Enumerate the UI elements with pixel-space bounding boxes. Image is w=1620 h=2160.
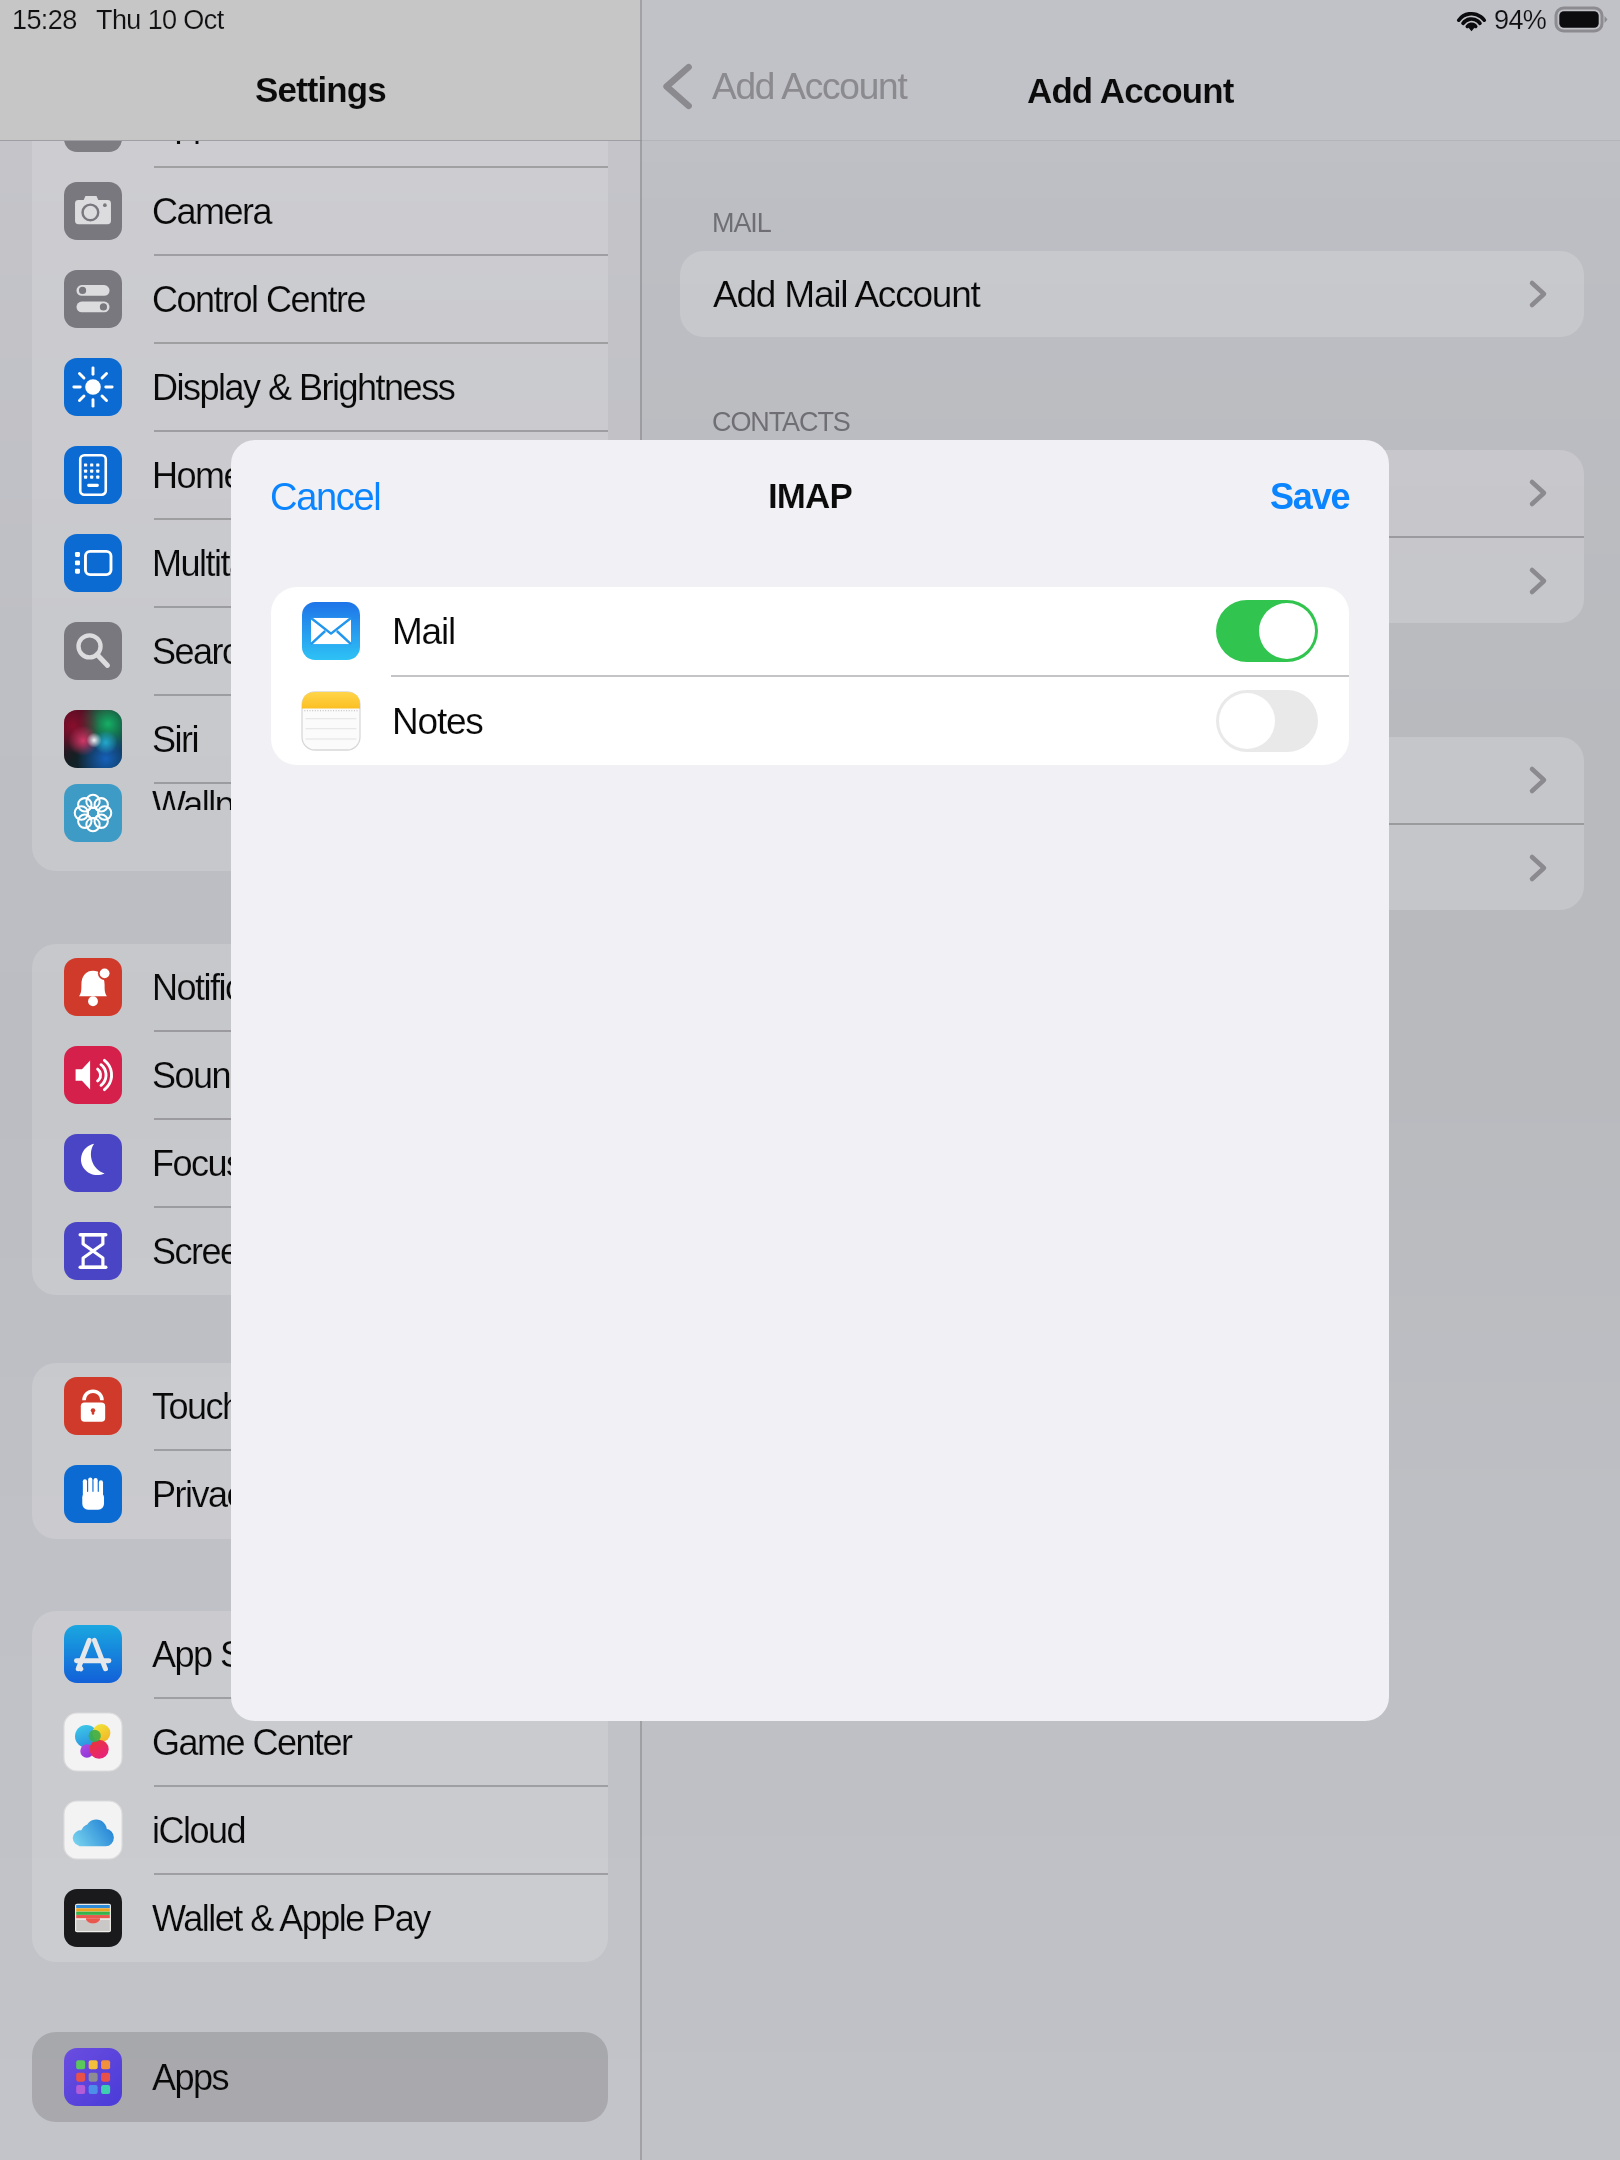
button[interactable]: App Store xyxy=(32,1611,608,1697)
button[interactable]: Multitasking & Gestures xyxy=(32,518,608,606)
staticText: Home xyxy=(152,455,243,495)
staticText: Display & Brightness xyxy=(152,367,455,407)
button[interactable]: Toggle on xyxy=(1216,600,1318,662)
staticText: Control Centre xyxy=(152,279,366,319)
staticText: iCloud xyxy=(152,1810,246,1850)
staticText: Siri xyxy=(152,719,198,759)
staticText: Add Contacts Account xyxy=(713,473,1054,514)
staticText: 94% xyxy=(1494,5,1547,35)
staticText: Wallet & Apple Pay xyxy=(152,1898,430,1938)
button[interactable]: Notes xyxy=(302,677,1318,765)
button[interactable]: Screen Time xyxy=(32,1206,608,1294)
staticText: App Store xyxy=(152,1634,299,1674)
button[interactable]: Camera xyxy=(32,166,608,254)
button[interactable]: Apps xyxy=(32,141,608,166)
button[interactable]: Back to Add Account xyxy=(655,58,907,114)
staticText: Touch ID & Passcode xyxy=(152,1386,468,1426)
staticText: Wallpaper xyxy=(152,784,300,810)
staticText: Apps xyxy=(152,2057,229,2097)
button[interactable]: Cancel xyxy=(260,466,391,528)
staticText: 15:28 xyxy=(12,5,77,35)
button[interactable]: Toggle off xyxy=(1216,690,1318,752)
staticText: Settings xyxy=(255,70,386,109)
staticText: Search xyxy=(152,631,258,671)
staticText: IMAP xyxy=(768,476,852,515)
staticText: Screen Time xyxy=(152,1231,338,1271)
staticText: Multitasking & Gestures xyxy=(152,543,498,583)
staticText: iCloud xyxy=(713,560,811,601)
button[interactable]: Add Calendar Account xyxy=(713,737,1546,823)
button[interactable]: Sounds xyxy=(32,1030,608,1118)
button[interactable]: Game Center xyxy=(32,1697,608,1785)
button[interactable]: iCloud xyxy=(32,1785,608,1873)
staticText: MAIL xyxy=(712,208,771,238)
staticText: Focus xyxy=(152,1143,243,1183)
button[interactable]: Notifications xyxy=(32,944,608,1030)
button[interactable]: Wallpaper xyxy=(32,782,608,810)
staticText: Camera xyxy=(152,191,272,231)
button[interactable]: Subscribed Calendars xyxy=(713,825,1546,910)
staticText: Cancel xyxy=(270,476,381,518)
button[interactable]: Touch ID & Passcode xyxy=(32,1363,608,1449)
staticText: Notifications xyxy=(152,967,329,1007)
staticText: Save xyxy=(1270,476,1350,516)
staticText: Add Mail Account xyxy=(713,274,980,315)
staticText: Sounds xyxy=(152,1055,266,1095)
button[interactable]: Control Centre xyxy=(32,254,608,342)
button[interactable]: Mail xyxy=(302,587,1318,675)
button[interactable]: Add Contacts Account xyxy=(713,450,1546,536)
staticText: Thu 10 Oct xyxy=(96,5,224,35)
staticText: Privacy & Security xyxy=(152,1474,418,1514)
staticText: Game Center xyxy=(152,1722,352,1762)
staticText: Mail xyxy=(392,611,456,652)
button[interactable]: Focus xyxy=(32,1118,608,1206)
button[interactable]: Wallet & Apple Pay xyxy=(32,1873,608,1961)
staticText: Add Calendar Account xyxy=(713,760,1058,801)
button[interactable]: Save xyxy=(1260,466,1360,526)
staticText: Apps xyxy=(152,141,229,143)
staticText: CONTACTS xyxy=(712,407,850,437)
button[interactable]: Add Mail Account xyxy=(713,251,1546,337)
button[interactable]: Display & Brightness xyxy=(32,342,608,430)
button[interactable]: Apps xyxy=(32,2032,608,2122)
button[interactable]: Siri xyxy=(32,694,608,782)
button[interactable]: iCloud xyxy=(713,538,1546,623)
staticText: Add Account xyxy=(1027,71,1234,110)
staticText: Add Account xyxy=(712,66,907,107)
staticText: Notes xyxy=(392,701,483,742)
button[interactable]: Search xyxy=(32,606,608,694)
button[interactable]: Home xyxy=(32,430,608,518)
button[interactable]: Privacy & Security xyxy=(32,1449,608,1537)
